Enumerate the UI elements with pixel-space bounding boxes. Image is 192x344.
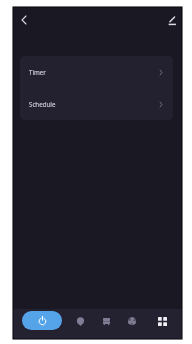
button[interactable]: Apps: [151, 310, 173, 332]
button[interactable]: Schedule: [20, 88, 173, 120]
button[interactable]: Curtain: [95, 310, 117, 332]
button[interactable]: Back: [16, 12, 32, 28]
button[interactable]: Light: [69, 310, 91, 332]
staticText: Schedule: [29, 100, 56, 108]
button[interactable]: Fan: [121, 310, 143, 332]
button[interactable]: Timer: [20, 56, 173, 88]
button[interactable]: Edit: [165, 12, 181, 28]
staticText: Timer: [29, 68, 46, 76]
button[interactable]: Power: [22, 311, 62, 330]
